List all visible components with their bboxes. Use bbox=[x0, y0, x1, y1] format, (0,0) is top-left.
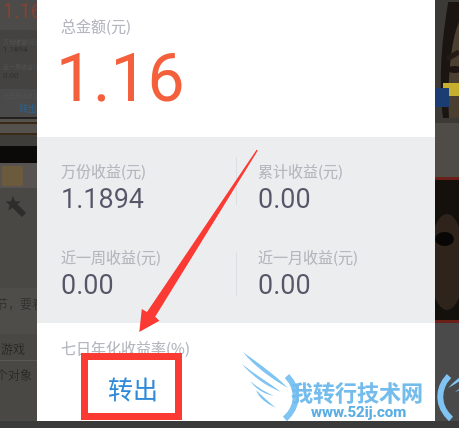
staticText: 我转行技术网 bbox=[291, 375, 424, 407]
staticText: 1.1894 bbox=[61, 183, 144, 215]
staticText: 近一周收益(元) bbox=[3, 62, 37, 71]
staticText: 1.16 bbox=[3, 0, 37, 22]
staticText: 累计收益(元) bbox=[258, 160, 344, 182]
staticText: 0.00 bbox=[258, 183, 311, 215]
staticText: 近一月收益(元) bbox=[258, 246, 359, 268]
staticText: 个对象 bbox=[0, 366, 33, 383]
button[interactable]: 转出 bbox=[84, 356, 182, 420]
staticText: 1.16 bbox=[56, 40, 185, 117]
staticText: 万份收益(元) bbox=[61, 160, 147, 182]
staticText: 转出 bbox=[108, 370, 159, 406]
staticText: 总金额(元) bbox=[61, 15, 132, 37]
staticText: 0.00 bbox=[3, 71, 19, 80]
staticText: 1.1894 bbox=[3, 45, 28, 54]
staticText: 0.00 bbox=[258, 269, 311, 301]
staticText: 近一周收益(元) bbox=[61, 246, 162, 268]
staticText: www.52ij.com bbox=[311, 403, 407, 421]
staticText: 万份收益(元) bbox=[3, 37, 37, 46]
staticText: 节，要看 bbox=[0, 295, 37, 312]
staticText: 游戏 bbox=[1, 340, 26, 357]
staticText: 0.00 bbox=[61, 269, 114, 301]
staticText: 七日年化收益率(%) bbox=[61, 337, 190, 359]
staticText: 转出 bbox=[19, 102, 37, 115]
